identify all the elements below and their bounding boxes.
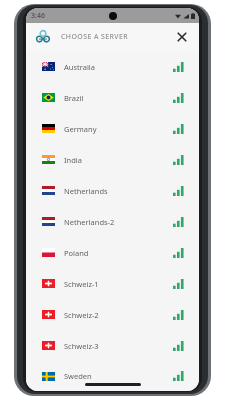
- button[interactable]: Poland: [26, 237, 199, 268]
- button[interactable]: Sweden: [26, 361, 199, 391]
- button[interactable]: Netherlands-2: [26, 206, 199, 237]
- staticText: 3:46: [31, 11, 45, 21]
- staticText: Netherlands-2: [64, 217, 115, 227]
- button[interactable]: Brazil: [26, 82, 199, 113]
- staticText: Australia: [64, 62, 95, 72]
- staticText: Netherlands: [64, 186, 108, 196]
- button[interactable]: Australia: [26, 51, 199, 82]
- staticText: CHOOSE A SERVER: [61, 32, 128, 42]
- button[interactable]: Netherlands: [26, 175, 199, 206]
- staticText: Germany: [64, 124, 97, 134]
- button[interactable]: India: [26, 144, 199, 175]
- button[interactable]: Close: [173, 28, 191, 46]
- staticText: Schweiz-3: [64, 341, 99, 351]
- button[interactable]: App logo: [35, 29, 51, 45]
- staticText: Poland: [64, 248, 89, 258]
- button[interactable]: Schweiz-2: [26, 299, 199, 330]
- staticText: Schweiz-2: [64, 310, 99, 320]
- button[interactable]: Schweiz-3: [26, 330, 199, 361]
- button[interactable]: Schweiz-1: [26, 268, 199, 299]
- staticText: Sweden: [64, 371, 92, 381]
- staticText: Schweiz-1: [64, 279, 99, 289]
- button[interactable]: Germany: [26, 113, 199, 144]
- staticText: Brazil: [64, 93, 84, 103]
- staticText: India: [64, 155, 82, 165]
